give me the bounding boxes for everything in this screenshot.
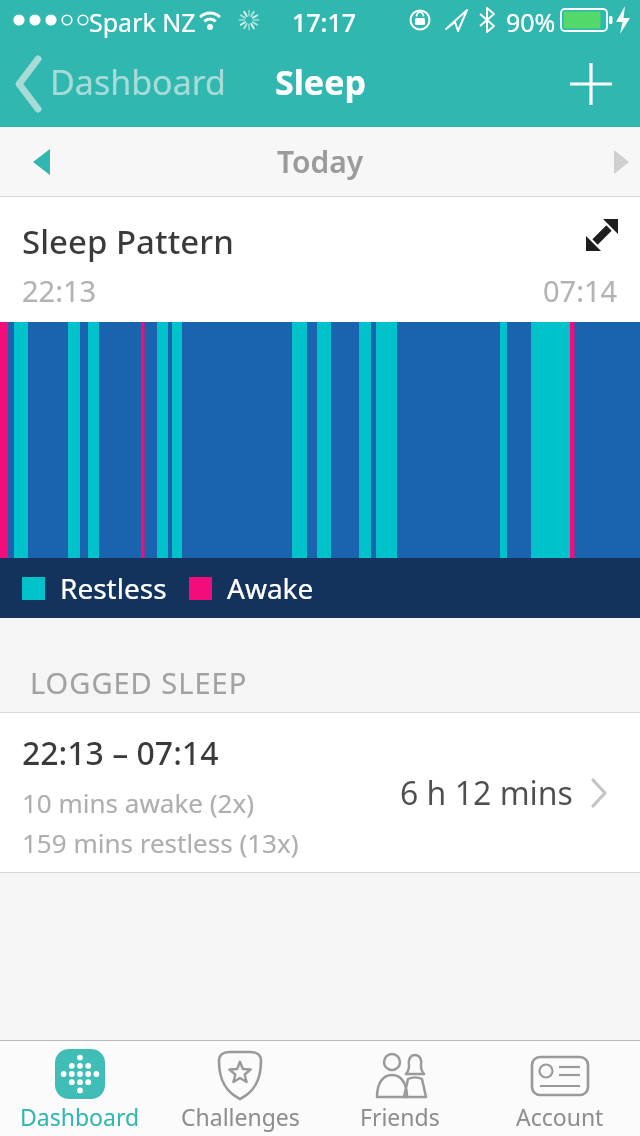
staticText: 6 h 12 mins	[400, 771, 573, 815]
staticText: Challenges	[181, 1101, 300, 1132]
button[interactable]	[580, 132, 640, 192]
button[interactable]: Dashboard	[0, 54, 223, 114]
staticText: Restless	[60, 569, 167, 607]
staticText: Dashboard	[20, 1101, 140, 1132]
button[interactable]	[568, 48, 640, 120]
staticText: Awake	[227, 569, 314, 607]
staticText: Account	[516, 1101, 604, 1132]
button[interactable]: 22:13 – 07:14	[0, 713, 640, 873]
staticText: 90%	[506, 5, 556, 39]
button[interactable]: Challenges	[160, 1041, 320, 1136]
staticText: 159 mins restless (13x)	[22, 825, 299, 860]
button[interactable]: Dashboard	[0, 1041, 160, 1136]
staticText: Sleep	[275, 59, 366, 105]
staticText: Spark NZ	[89, 5, 196, 39]
staticText: 10 mins awake (2x)	[22, 785, 254, 820]
staticText: 07:14	[543, 271, 618, 310]
button[interactable]: Account	[480, 1041, 640, 1136]
staticText: 22:13 – 07:14	[22, 731, 219, 775]
button[interactable]	[0, 132, 60, 192]
staticText: LOGGED SLEEP	[30, 663, 248, 702]
button[interactable]	[578, 211, 626, 259]
staticText: 22:13	[22, 271, 97, 310]
staticText: 17:17	[292, 5, 357, 39]
staticText: Sleep Pattern	[22, 219, 234, 264]
staticText: Friends	[360, 1101, 440, 1132]
staticText: Dashboard	[50, 59, 227, 105]
button[interactable]: Friends	[320, 1041, 480, 1136]
staticText: Today	[277, 141, 364, 182]
